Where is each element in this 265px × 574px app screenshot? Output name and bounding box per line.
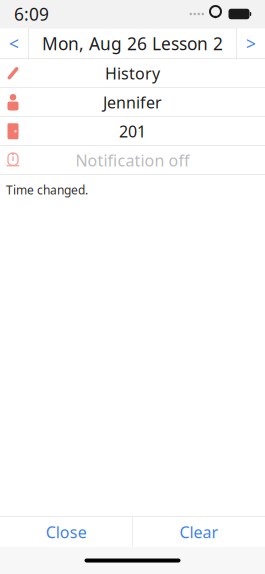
button[interactable]: Clear [133, 517, 265, 547]
staticText: Jennifer [103, 92, 162, 113]
staticText: Time changed. [6, 182, 88, 198]
staticText: > [246, 32, 256, 55]
staticText: History [105, 63, 160, 84]
staticText: Clear [179, 521, 218, 543]
button[interactable]: 201 [0, 117, 265, 146]
button[interactable]: Previous [0, 28, 28, 58]
staticText: Mon, Aug 26 Lesson 2 [42, 32, 223, 55]
staticText: < [9, 32, 19, 55]
button[interactable]: Next [237, 28, 265, 58]
staticText: Close [46, 521, 87, 543]
button[interactable]: History [0, 59, 265, 88]
staticText: 6:09 [14, 2, 49, 25]
staticText: Notification off [75, 150, 189, 171]
button[interactable]: Jennifer [0, 88, 265, 117]
button[interactable]: Close [0, 517, 132, 547]
button[interactable]: Notification off [0, 146, 265, 175]
staticText: 201 [119, 121, 146, 142]
